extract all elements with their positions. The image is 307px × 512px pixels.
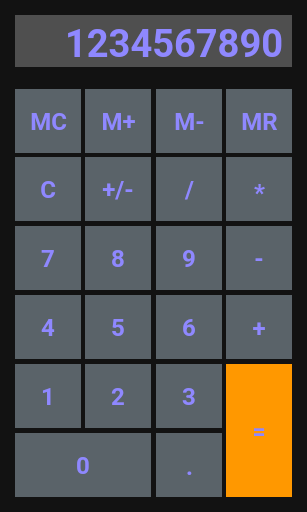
button[interactable]: Divide [156, 157, 222, 221]
button[interactable]: 1 [15, 364, 81, 428]
button[interactable]: 6 [156, 295, 222, 359]
staticText: M- [174, 108, 205, 136]
button[interactable]: Memory clear [15, 89, 81, 153]
staticText: MC [30, 108, 67, 136]
staticText: 0 [76, 452, 90, 480]
button[interactable]: Result display [15, 15, 292, 67]
staticText: 8 [111, 245, 125, 273]
staticText: 5 [111, 314, 125, 342]
staticText: 1234567890 [65, 22, 284, 67]
staticText: - [254, 245, 264, 273]
staticText: C [40, 176, 56, 204]
button[interactable]: Toggle sign [85, 157, 151, 221]
staticText: +/- [102, 176, 134, 204]
button[interactable]: Memory subtract [156, 89, 222, 153]
button[interactable]: Clear [15, 157, 81, 221]
staticText: 2 [111, 383, 125, 411]
button[interactable]: Equals [226, 364, 292, 497]
staticText: 3 [182, 383, 196, 411]
staticText: 6 [182, 314, 196, 342]
staticText: 9 [182, 245, 196, 273]
button[interactable]: 9 [156, 226, 222, 290]
button[interactable]: 8 [85, 226, 151, 290]
staticText: 4 [41, 314, 55, 342]
staticText: + [252, 315, 266, 343]
staticText: . [186, 453, 193, 481]
button[interactable]: Minus [226, 226, 292, 290]
button[interactable]: Memory add [85, 89, 151, 153]
staticText: MR [241, 108, 278, 136]
staticText: 7 [41, 245, 55, 273]
staticText: / [185, 176, 194, 204]
staticText: M+ [101, 108, 136, 136]
button[interactable]: 2 [85, 364, 151, 428]
staticText: = [252, 419, 266, 446]
button[interactable]: Multiply [226, 157, 292, 221]
button[interactable]: Plus [226, 295, 292, 359]
staticText: 1 [41, 383, 55, 411]
button[interactable]: 5 [85, 295, 151, 359]
button[interactable]: 7 [15, 226, 81, 290]
button[interactable]: 3 [156, 364, 222, 428]
button[interactable]: Memory recall [226, 89, 292, 153]
button[interactable]: Decimal point [156, 433, 222, 497]
button[interactable]: 0 [15, 433, 151, 497]
button[interactable]: 4 [15, 295, 81, 359]
staticText: * [254, 179, 265, 207]
